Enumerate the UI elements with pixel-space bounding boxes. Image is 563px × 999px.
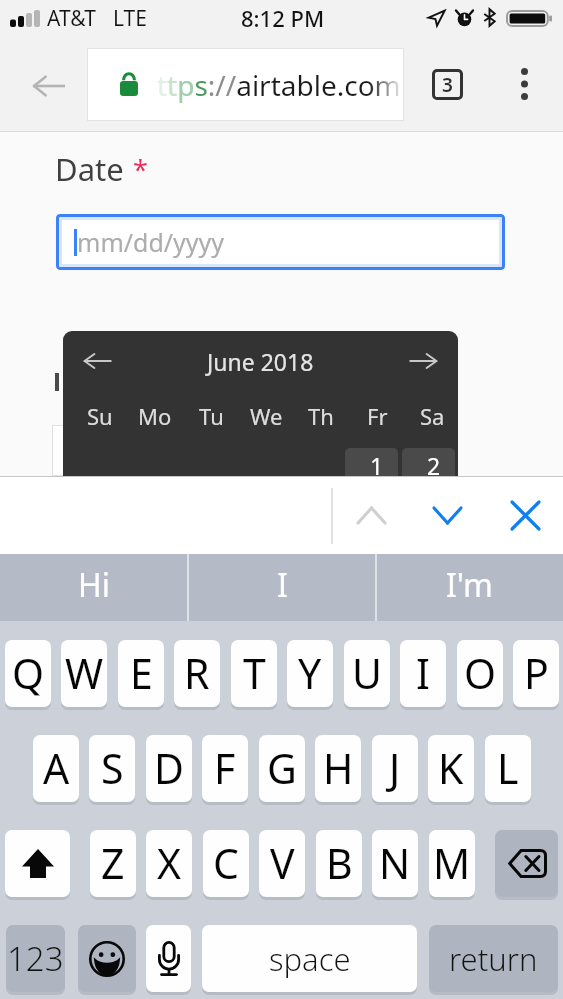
staticText: return bbox=[449, 938, 538, 980]
button[interactable]: E bbox=[118, 640, 164, 707]
button[interactable]: Previous month bbox=[67, 331, 129, 391]
button[interactable]: More options bbox=[498, 57, 550, 111]
button[interactable]: M bbox=[429, 830, 475, 897]
button[interactable]: I bbox=[189, 554, 375, 621]
staticText: We bbox=[250, 401, 283, 431]
staticText: H bbox=[323, 740, 354, 796]
staticText: AT&T bbox=[47, 4, 96, 33]
staticText: K bbox=[438, 740, 464, 796]
button[interactable]: S bbox=[89, 735, 135, 802]
button[interactable]: A bbox=[33, 735, 79, 802]
staticText: mm/dd/yyyy bbox=[77, 225, 225, 259]
staticText: J bbox=[389, 740, 401, 796]
staticText: Fr bbox=[367, 401, 388, 431]
button[interactable]: J bbox=[372, 735, 418, 802]
staticText: N bbox=[379, 835, 411, 891]
button[interactable]: 2 bbox=[402, 448, 455, 476]
staticText: M bbox=[433, 835, 471, 891]
staticText: U bbox=[352, 645, 382, 701]
staticText: B bbox=[326, 835, 353, 891]
button[interactable]: R bbox=[174, 640, 220, 707]
staticText: Date bbox=[55, 148, 124, 190]
button[interactable]: Backspace bbox=[495, 830, 558, 897]
button[interactable]: K bbox=[428, 735, 474, 802]
button[interactable]: Emoji bbox=[78, 925, 136, 992]
staticText: G bbox=[267, 740, 297, 796]
staticText: W bbox=[65, 645, 104, 701]
button[interactable]: T bbox=[231, 640, 277, 707]
button[interactable]: Next month bbox=[392, 331, 454, 391]
button[interactable]: D bbox=[146, 735, 192, 802]
staticText: Hi bbox=[78, 563, 110, 607]
staticText: LTE bbox=[113, 4, 147, 33]
button[interactable]: Back bbox=[14, 63, 84, 109]
button[interactable]: Q bbox=[5, 640, 51, 707]
button[interactable]: Y bbox=[287, 640, 333, 707]
staticText: 8:12 PM bbox=[241, 3, 325, 33]
staticText: T bbox=[243, 645, 266, 701]
staticText: * bbox=[133, 151, 148, 188]
button[interactable]: B bbox=[316, 830, 362, 897]
button[interactable]: V bbox=[259, 830, 305, 897]
staticText: L bbox=[497, 740, 519, 796]
staticText: F bbox=[214, 740, 236, 796]
button[interactable]: Hi bbox=[0, 554, 187, 621]
staticText: Sa bbox=[420, 401, 445, 431]
staticText: V bbox=[270, 835, 295, 891]
staticText: 3 bbox=[442, 72, 453, 98]
staticText: S bbox=[101, 740, 124, 796]
button[interactable]: P bbox=[513, 640, 559, 707]
button[interactable]: Numbers bbox=[6, 925, 65, 992]
staticText: C bbox=[213, 835, 239, 891]
button[interactable]: I bbox=[400, 640, 446, 707]
button[interactable]: mm/dd/yyyy bbox=[56, 214, 505, 270]
staticText: R bbox=[184, 645, 210, 701]
staticText: ttps://airtable.com bbox=[157, 66, 401, 104]
staticText: E bbox=[130, 645, 153, 701]
staticText: Y bbox=[298, 645, 322, 701]
button[interactable]: Shift bbox=[5, 830, 70, 897]
staticText: Z bbox=[101, 835, 125, 891]
staticText: 1 bbox=[370, 450, 384, 476]
button[interactable]: ttps://airtable.com bbox=[87, 48, 404, 121]
staticText: I bbox=[277, 563, 288, 607]
staticText: Tu bbox=[199, 401, 224, 431]
staticText: Th bbox=[308, 401, 334, 431]
staticText: Su bbox=[87, 401, 113, 431]
button[interactable]: Return bbox=[429, 925, 558, 992]
staticText: A bbox=[43, 740, 70, 796]
button[interactable]: Next field bbox=[414, 482, 480, 548]
staticText: June 2018 bbox=[207, 346, 314, 377]
staticText: I bbox=[416, 645, 430, 701]
button[interactable]: C bbox=[203, 830, 249, 897]
button[interactable]: U bbox=[344, 640, 390, 707]
button[interactable]: Tabs bbox=[420, 57, 474, 111]
staticText: 123 bbox=[7, 936, 64, 981]
staticText: O bbox=[464, 645, 497, 701]
button[interactable]: G bbox=[259, 735, 305, 802]
button[interactable]: Z bbox=[90, 830, 136, 897]
button[interactable]: 1 bbox=[345, 448, 398, 476]
button[interactable]: O bbox=[457, 640, 503, 707]
staticText: space bbox=[269, 938, 351, 980]
button[interactable]: L bbox=[485, 735, 531, 802]
staticText: Mo bbox=[138, 401, 172, 431]
staticText: D bbox=[154, 740, 184, 796]
button[interactable]: X bbox=[146, 830, 192, 897]
staticText: I'm bbox=[446, 563, 494, 607]
button[interactable]: H bbox=[315, 735, 361, 802]
button[interactable]: N bbox=[372, 830, 418, 897]
button[interactable]: F bbox=[202, 735, 248, 802]
staticText: Q bbox=[12, 645, 45, 701]
staticText: X bbox=[157, 835, 182, 891]
button[interactable]: Previous field bbox=[338, 482, 404, 548]
button[interactable]: Dictation bbox=[146, 925, 191, 992]
button[interactable]: W bbox=[61, 640, 107, 707]
button[interactable]: Close keyboard bbox=[492, 482, 558, 548]
staticText: P bbox=[524, 645, 549, 701]
button[interactable]: Space bbox=[202, 925, 417, 992]
staticText: 2 bbox=[427, 450, 441, 476]
button[interactable]: I'm bbox=[377, 554, 563, 621]
